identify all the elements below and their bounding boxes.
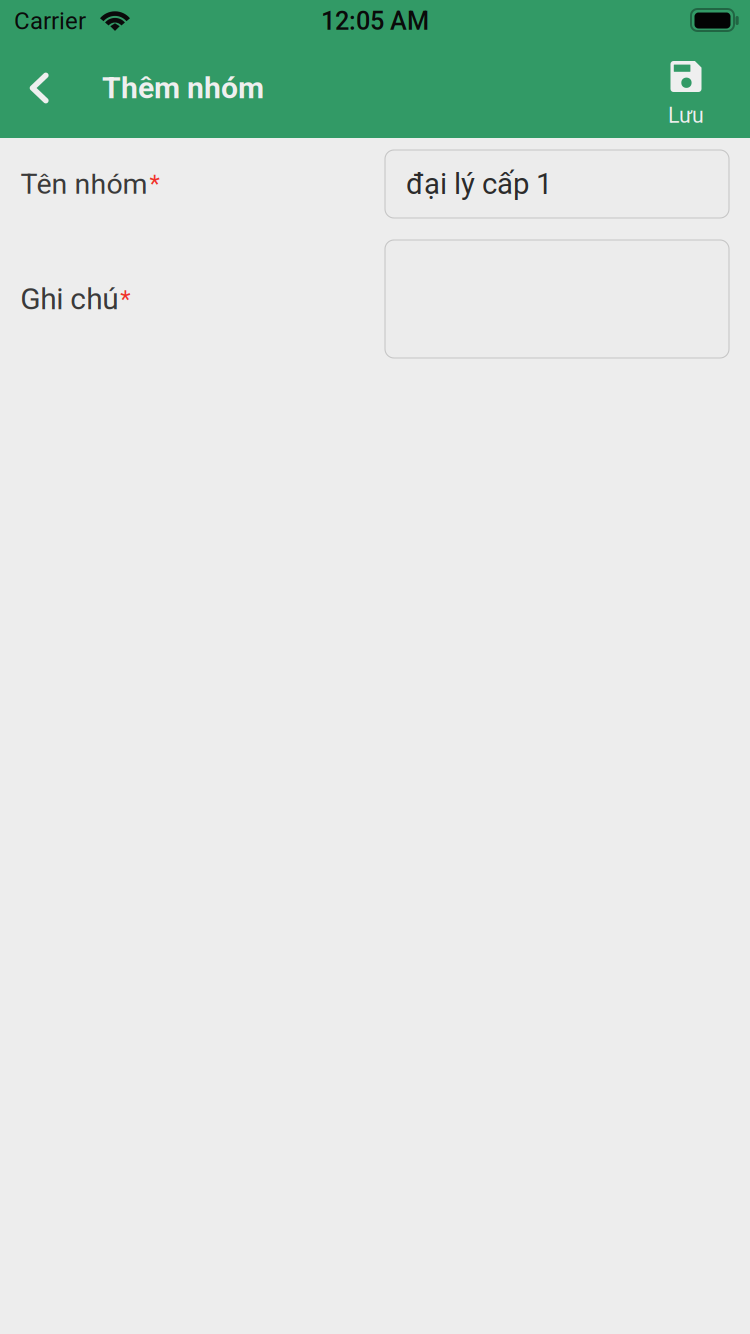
button[interactable]: Ghi chú bbox=[385, 240, 729, 358]
staticText: Carrier bbox=[14, 7, 86, 35]
button[interactable]: Back bbox=[8, 51, 70, 125]
staticText: 12:05 AM bbox=[321, 6, 429, 36]
button[interactable]: Tên nhóm bbox=[385, 150, 729, 218]
staticText: Tên nhóm bbox=[20, 167, 147, 201]
button[interactable]: Lưu bbox=[638, 61, 734, 143]
staticText: Ghi chú bbox=[20, 281, 118, 316]
staticText: Lưu bbox=[668, 103, 704, 128]
staticText: đại lý cấp 1 bbox=[406, 167, 552, 201]
staticText: * bbox=[120, 285, 130, 313]
staticText: * bbox=[149, 169, 159, 198]
staticText: Thêm nhóm bbox=[102, 70, 264, 106]
